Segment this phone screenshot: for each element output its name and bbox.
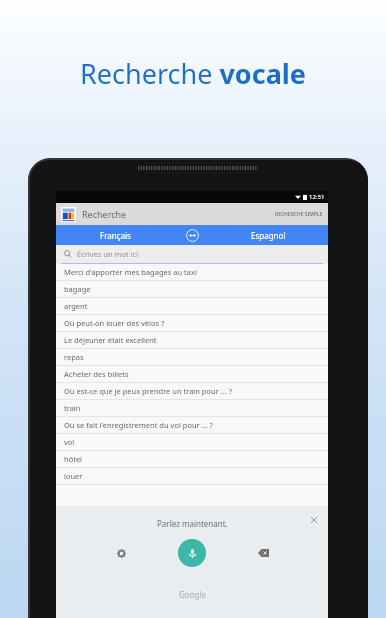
button[interactable]: hôtel xyxy=(56,451,328,468)
button[interactable]: Le déjeuner était excellent xyxy=(56,332,328,349)
staticText: Où se fait l'enregistrement du vol pour … xyxy=(64,420,213,430)
staticText: vol xyxy=(64,437,75,447)
button[interactable]: Français xyxy=(56,225,175,245)
staticText: Où peut-on louer des vélos ? xyxy=(64,318,165,328)
button[interactable]: Où se fait l'enregistrement du vol pour … xyxy=(56,417,328,434)
staticText: train xyxy=(64,403,81,413)
staticText: Google xyxy=(179,589,206,600)
staticText: Merci d'apporter mes bagages au taxi xyxy=(64,267,197,277)
button[interactable]: Espagnol xyxy=(209,225,328,245)
button[interactable]: Acheter des billets xyxy=(56,366,328,383)
staticText: Recherche vocale xyxy=(80,55,306,92)
button[interactable]: Inverser les langues xyxy=(175,225,209,245)
button[interactable]: Recherche xyxy=(56,203,328,225)
button[interactable]: Où est-ce que je peux prendre un train p… xyxy=(56,383,328,400)
button[interactable]: Écrivez un mot ici xyxy=(56,245,328,263)
button[interactable]: bagage xyxy=(56,281,328,298)
staticText: repas xyxy=(64,352,84,362)
staticText: Parlez maintenant. xyxy=(157,518,228,529)
button[interactable]: vol xyxy=(56,434,328,451)
staticText: Recherche xyxy=(82,208,127,220)
staticText: hôtel xyxy=(64,454,83,464)
staticText: argent xyxy=(64,301,88,311)
button[interactable]: RECHERCHE SIMPLE xyxy=(275,211,323,218)
staticText: Espagnol xyxy=(251,230,286,241)
button[interactable]: Merci d'apporter mes bagages au taxi xyxy=(56,264,328,281)
button[interactable]: Retour arrière xyxy=(250,540,276,566)
staticText: Acheter des billets xyxy=(64,369,129,379)
staticText: Le déjeuner était excellent xyxy=(64,335,157,345)
button[interactable]: louer xyxy=(56,468,328,485)
staticText: RECHERCHE SIMPLE xyxy=(275,211,323,218)
staticText: louer xyxy=(64,471,83,481)
button[interactable]: Paramètres xyxy=(108,540,134,566)
button[interactable]: Fermer xyxy=(308,514,320,526)
staticText: Écrivez un mot ici xyxy=(77,249,139,259)
staticText: 12:51 xyxy=(309,193,325,201)
button[interactable]: repas xyxy=(56,349,328,366)
button[interactable]: Microphone xyxy=(178,539,206,567)
button[interactable]: train xyxy=(56,400,328,417)
button[interactable]: argent xyxy=(56,298,328,315)
staticText: Français xyxy=(100,230,131,241)
button[interactable]: Où peut-on louer des vélos ? xyxy=(56,315,328,332)
staticText: Où est-ce que je peux prendre un train p… xyxy=(64,386,232,396)
staticText: bagage xyxy=(64,284,91,294)
